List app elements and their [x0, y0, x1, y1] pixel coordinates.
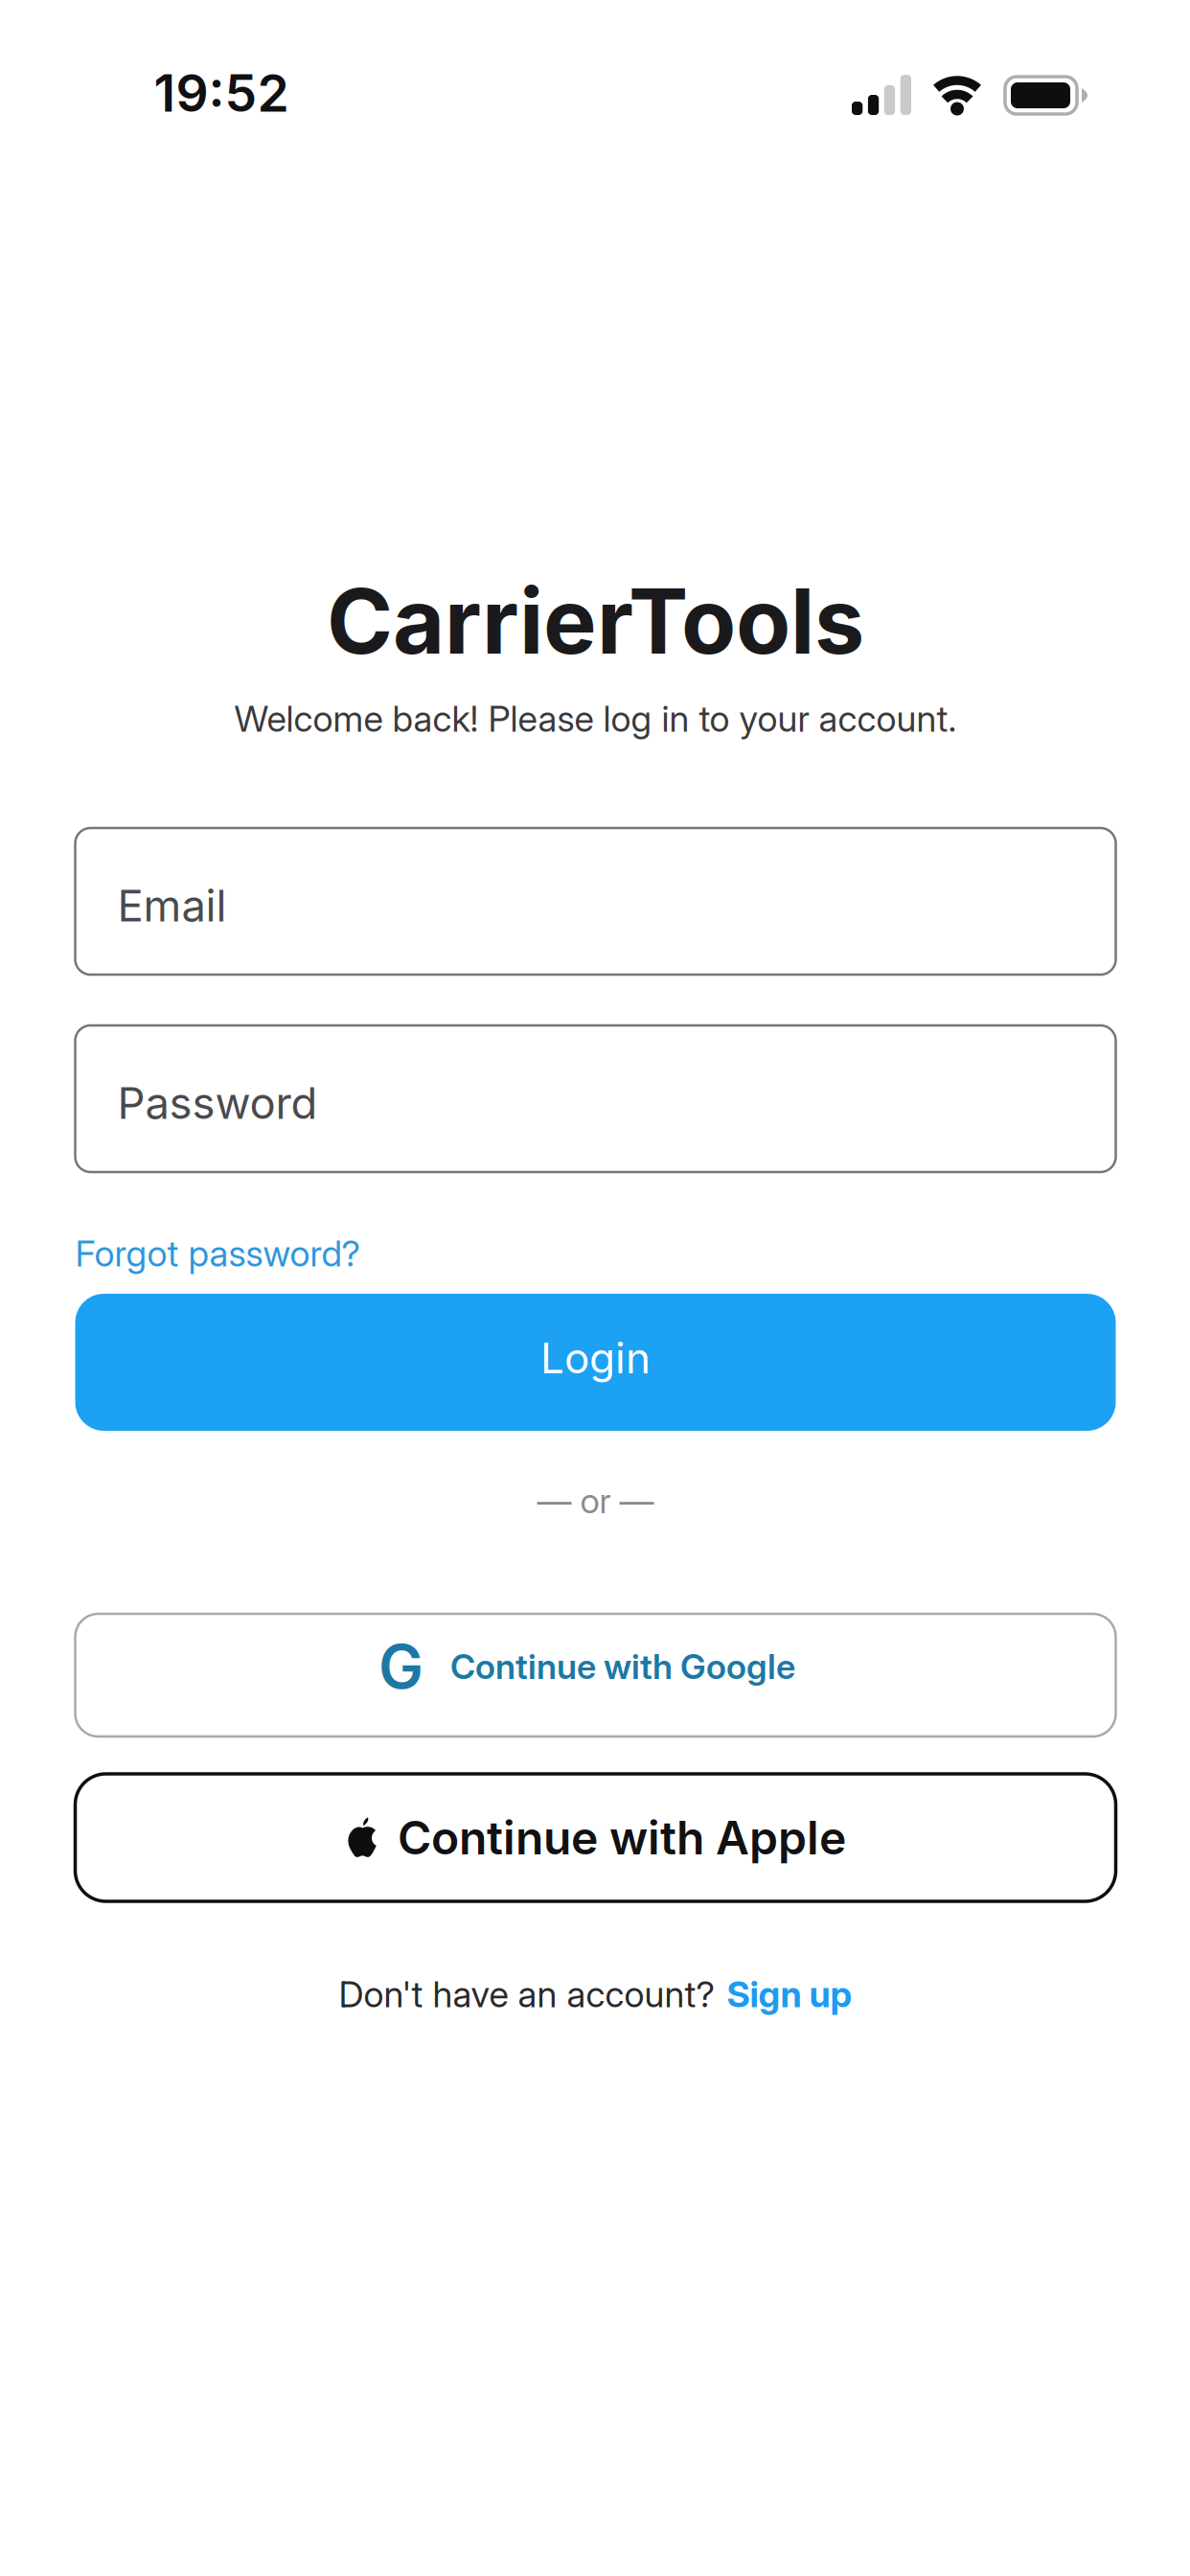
- staticText: Continue with Google: [450, 1646, 795, 1687]
- button[interactable]: Forgot password?: [75, 1232, 360, 1275]
- staticText: Email: [117, 880, 227, 931]
- staticText: 19:52: [154, 63, 289, 123]
- button[interactable]: G: [75, 1614, 1116, 1736]
- staticText: Welcome back! Please log in to your acco…: [234, 698, 957, 740]
- button[interactable]: Continue with Apple: [75, 1774, 1116, 1901]
- button[interactable]: Login: [75, 1294, 1116, 1431]
- button[interactable]: Sign up: [727, 1973, 852, 2015]
- staticText: Forgot password?: [75, 1232, 360, 1275]
- staticText: Login: [540, 1333, 651, 1383]
- staticText: CarrierTools: [327, 568, 864, 674]
- staticText: Don't have an account?: [339, 1973, 714, 2015]
- staticText: Password: [117, 1077, 318, 1129]
- staticText: — or —: [537, 1480, 654, 1521]
- staticText: Continue with Apple: [398, 1810, 846, 1865]
- staticText: G: [378, 1631, 423, 1702]
- staticText: Sign up: [727, 1973, 852, 2015]
